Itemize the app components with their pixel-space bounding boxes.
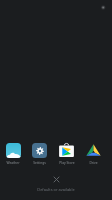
staticText: Drive bbox=[89, 160, 98, 164]
staticText: Weather bbox=[6, 160, 20, 164]
button[interactable]: Settings bbox=[26, 143, 53, 164]
button[interactable]: Weather bbox=[0, 143, 26, 164]
staticText: Settings bbox=[33, 160, 46, 164]
button[interactable]: Play Store bbox=[53, 143, 80, 164]
staticText: Play Store bbox=[59, 160, 75, 164]
button[interactable]: Drive bbox=[80, 143, 107, 164]
staticText: Defaults or available bbox=[0, 187, 112, 192]
button[interactable]: Close bbox=[48, 171, 65, 188]
